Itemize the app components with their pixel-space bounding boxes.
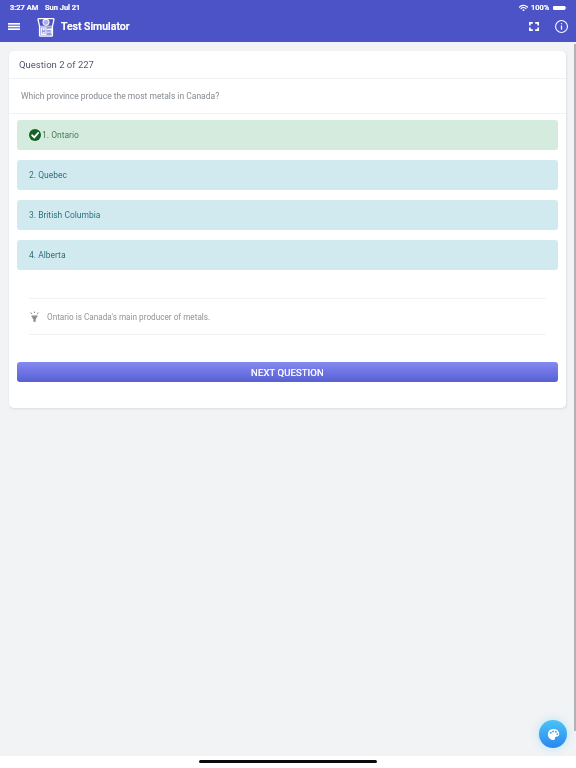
- staticText: 1. Ontario: [42, 130, 79, 140]
- button[interactable]: 1. Ontario: [17, 120, 558, 150]
- staticText: NEXT QUESTION: [251, 367, 324, 378]
- staticText: Which province produce the most metals i…: [21, 91, 220, 101]
- staticText: 100%: [531, 3, 550, 12]
- staticText: Sun Jul 21: [45, 3, 81, 12]
- staticText: 4. Alberta: [29, 250, 66, 260]
- staticText: Question 2 of 227: [19, 59, 94, 70]
- button[interactable]: Information: [550, 16, 573, 37]
- staticText: Ontario is Canada's main producer of met…: [47, 312, 211, 322]
- button[interactable]: Change theme: [539, 720, 567, 748]
- staticText: Test Simulator: [61, 20, 130, 32]
- button[interactable]: 4. Alberta: [17, 240, 558, 270]
- button[interactable]: Open navigation menu: [3, 16, 25, 37]
- staticText: 2. Quebec: [29, 170, 67, 180]
- button[interactable]: 2. Quebec: [17, 160, 558, 190]
- staticText: 3. British Columbia: [29, 210, 101, 220]
- button[interactable]: Fullscreen: [522, 16, 545, 37]
- staticText: 3:27 AM: [10, 3, 39, 12]
- button[interactable]: 3. British Columbia: [17, 200, 558, 230]
- button[interactable]: NEXT QUESTION: [17, 362, 558, 382]
